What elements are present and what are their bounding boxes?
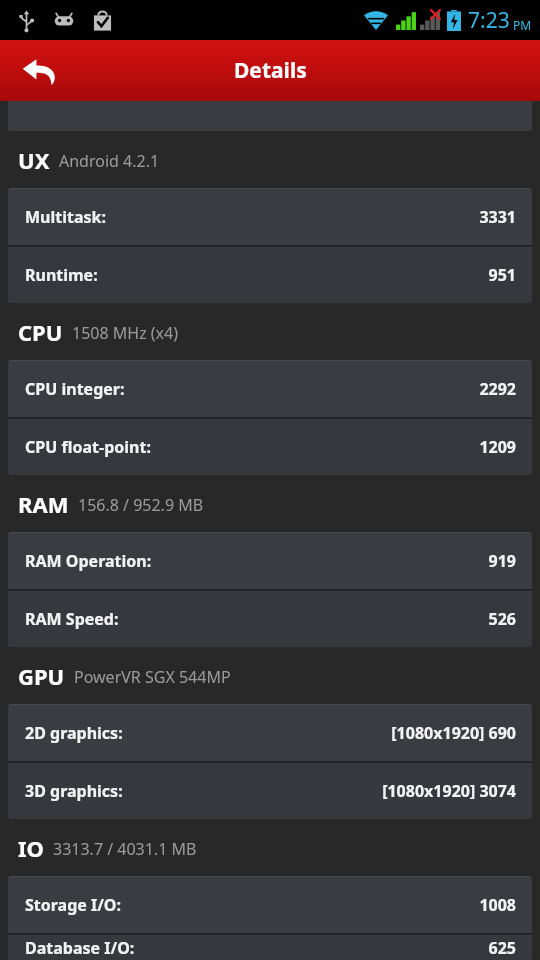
button[interactable]: 3D graphics: — [8, 763, 532, 819]
staticText: 3313.7 / 4031.1 MB — [53, 838, 197, 860]
button[interactable]: RAM Operation: — [8, 533, 532, 589]
staticText: [1080x1920] 690 — [391, 722, 516, 744]
button[interactable]: Runtime: — [8, 247, 532, 303]
staticText: GPU — [18, 661, 65, 691]
button[interactable]: CPU integer: — [8, 361, 532, 417]
staticText: UX — [18, 145, 50, 175]
staticText: 1209 — [479, 436, 516, 458]
button[interactable]: Back — [10, 41, 70, 101]
staticText: RAM Speed: — [25, 608, 119, 630]
staticText: IO — [18, 833, 44, 863]
staticText: Runtime: — [25, 264, 98, 286]
staticText: 951 — [488, 264, 516, 286]
staticText: 1508 MHz (x4) — [72, 322, 179, 344]
button[interactable]: CPU float-point: — [8, 419, 532, 475]
staticText: 2D graphics: — [25, 722, 123, 744]
staticText: 1008 — [479, 894, 516, 916]
staticText: 625 — [488, 937, 516, 959]
button[interactable]: Multitask: — [8, 189, 532, 245]
staticText: PM — [513, 17, 532, 33]
button[interactable]: Storage I/O: — [8, 877, 532, 933]
staticText: 156.8 / 952.9 MB — [78, 494, 204, 516]
staticText: 7:23 — [468, 6, 510, 35]
staticText: Storage I/O: — [25, 894, 122, 916]
staticText: 526 — [488, 608, 516, 630]
staticText: Details — [234, 56, 307, 85]
staticText: [1080x1920] 3074 — [382, 780, 516, 802]
staticText: CPU float-point: — [25, 436, 151, 458]
staticText: 3D graphics: — [25, 780, 123, 802]
staticText: Android 4.2.1 — [59, 150, 160, 172]
staticText: CPU integer: — [25, 378, 125, 400]
button[interactable]: Database I/O: — [8, 935, 532, 960]
staticText: Database I/O: — [25, 937, 135, 959]
staticText: RAM — [18, 489, 69, 519]
staticText: 3331 — [479, 206, 516, 228]
staticText: RAM Operation: — [25, 550, 152, 572]
staticText: 919 — [488, 550, 516, 572]
button[interactable]: RAM Speed: — [8, 591, 532, 647]
staticText: 2292 — [479, 378, 516, 400]
staticText: CPU — [18, 317, 63, 347]
staticText: Multitask: — [25, 206, 106, 228]
staticText: PowerVR SGX 544MP — [74, 666, 231, 688]
button[interactable]: 2D graphics: — [8, 705, 532, 761]
